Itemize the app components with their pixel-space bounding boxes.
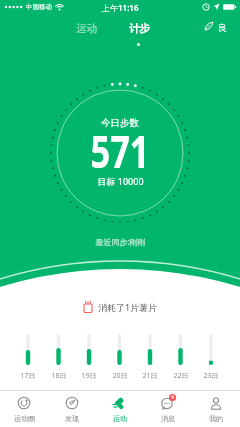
staticText: 最近同步:刚刚: [95, 236, 146, 247]
staticText: 目标 10000: [97, 175, 144, 187]
staticText: 我的: [209, 414, 223, 423]
staticText: 18日: [51, 371, 67, 381]
button[interactable]: 我的: [192, 391, 240, 427]
staticText: 运动: [113, 414, 127, 423]
button[interactable]: 计步: [117, 22, 161, 35]
staticText: 消息: [161, 414, 175, 423]
staticText: 今日步数: [101, 117, 139, 129]
button[interactable]: 运动圈: [0, 391, 48, 427]
staticText: 17日: [20, 371, 36, 381]
button[interactable]: 运动: [96, 391, 144, 427]
staticText: 19日: [81, 371, 97, 381]
staticText: 上午11:16: [102, 2, 139, 13]
button[interactable]: 良: [204, 21, 227, 33]
button[interactable]: 4: [144, 391, 192, 427]
staticText: 中国移动: [26, 3, 52, 11]
staticText: 22日: [173, 371, 189, 381]
staticText: 20日: [112, 371, 128, 381]
staticText: 发现: [65, 414, 79, 423]
button[interactable]: 发现: [48, 391, 96, 427]
button[interactable]: 运动: [64, 22, 108, 35]
staticText: 计步: [129, 22, 150, 35]
staticText: 运动圈: [14, 414, 35, 423]
staticText: 良: [218, 22, 227, 33]
staticText: 21日: [142, 371, 158, 381]
staticText: 运动: [76, 22, 97, 35]
staticText: 23日: [203, 371, 219, 381]
staticText: 4: [171, 394, 174, 401]
staticText: 消耗了1片薯片: [98, 301, 158, 313]
button[interactable]: 消耗了1片薯片: [82, 300, 158, 313]
staticText: 571: [90, 121, 150, 181]
